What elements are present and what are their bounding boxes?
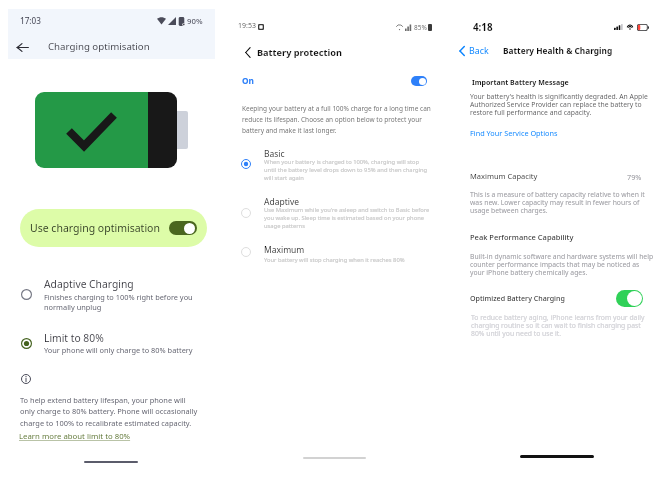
staticText: 19:53	[238, 21, 256, 31]
staticText: 17:03	[20, 15, 41, 26]
staticText: Use Maximum while you're asleep and swit…	[264, 206, 430, 230]
staticText: Use charging optimisation	[30, 221, 169, 235]
staticText: Keeping your battery at a full 100% char…	[242, 104, 431, 135]
button[interactable]: Back	[457, 42, 489, 60]
button[interactable]	[231, 242, 438, 282]
staticText: Your phone will only charge to 80% batte…	[44, 345, 193, 355]
staticText: Maximum	[264, 244, 305, 256]
button[interactable]	[8, 326, 215, 358]
staticText: This is a measure of battery capacity re…	[470, 190, 645, 215]
staticText: On	[242, 75, 254, 86]
staticText: When your battery is charged to 100%, ch…	[264, 158, 428, 182]
button[interactable]: Use charging optimisation	[20, 209, 207, 247]
staticText: Optimized Battery Charging	[470, 293, 565, 303]
button[interactable]: On	[231, 71, 438, 97]
staticText: 79%	[627, 172, 642, 182]
button[interactable]	[231, 145, 438, 185]
button[interactable]	[231, 194, 438, 234]
staticText: Back	[469, 45, 489, 57]
staticText: Charging optimisation	[48, 40, 150, 53]
staticText: Built-in dynamic software and hardware s…	[470, 252, 654, 277]
staticText: To help extend battery lifespan, your ph…	[20, 395, 198, 428]
staticText: 90%	[187, 16, 203, 27]
staticText: Your battery's health is significantly d…	[470, 92, 648, 117]
staticText: Limit to 80%	[44, 331, 104, 345]
staticText: Battery Health & Charging	[503, 45, 613, 56]
staticText: Important Battery Message	[472, 78, 569, 88]
staticText: Adaptive Charging	[44, 277, 134, 291]
staticText: Your battery will stop charging when it …	[264, 256, 405, 264]
staticText: Maximum Capacity	[470, 171, 538, 181]
staticText: Adaptive	[264, 196, 300, 208]
button[interactable]: Optimized Battery Charging	[457, 289, 657, 315]
button[interactable]: Back	[238, 42, 258, 62]
staticText: 85%	[414, 23, 427, 32]
staticText: Finishes charging to 100% right before y…	[44, 292, 193, 312]
staticText: Basic	[264, 148, 285, 160]
button[interactable]	[8, 272, 215, 314]
staticText: Peak Performance Capability	[470, 232, 574, 242]
staticText: 4:18	[473, 21, 493, 34]
staticText: Battery protection	[257, 46, 342, 59]
staticText: To reduce battery aging, iPhone learns f…	[471, 313, 645, 338]
button[interactable]: Back	[9, 34, 35, 60]
button[interactable]: Learn more about limit to 80%	[8, 9, 120, 20]
